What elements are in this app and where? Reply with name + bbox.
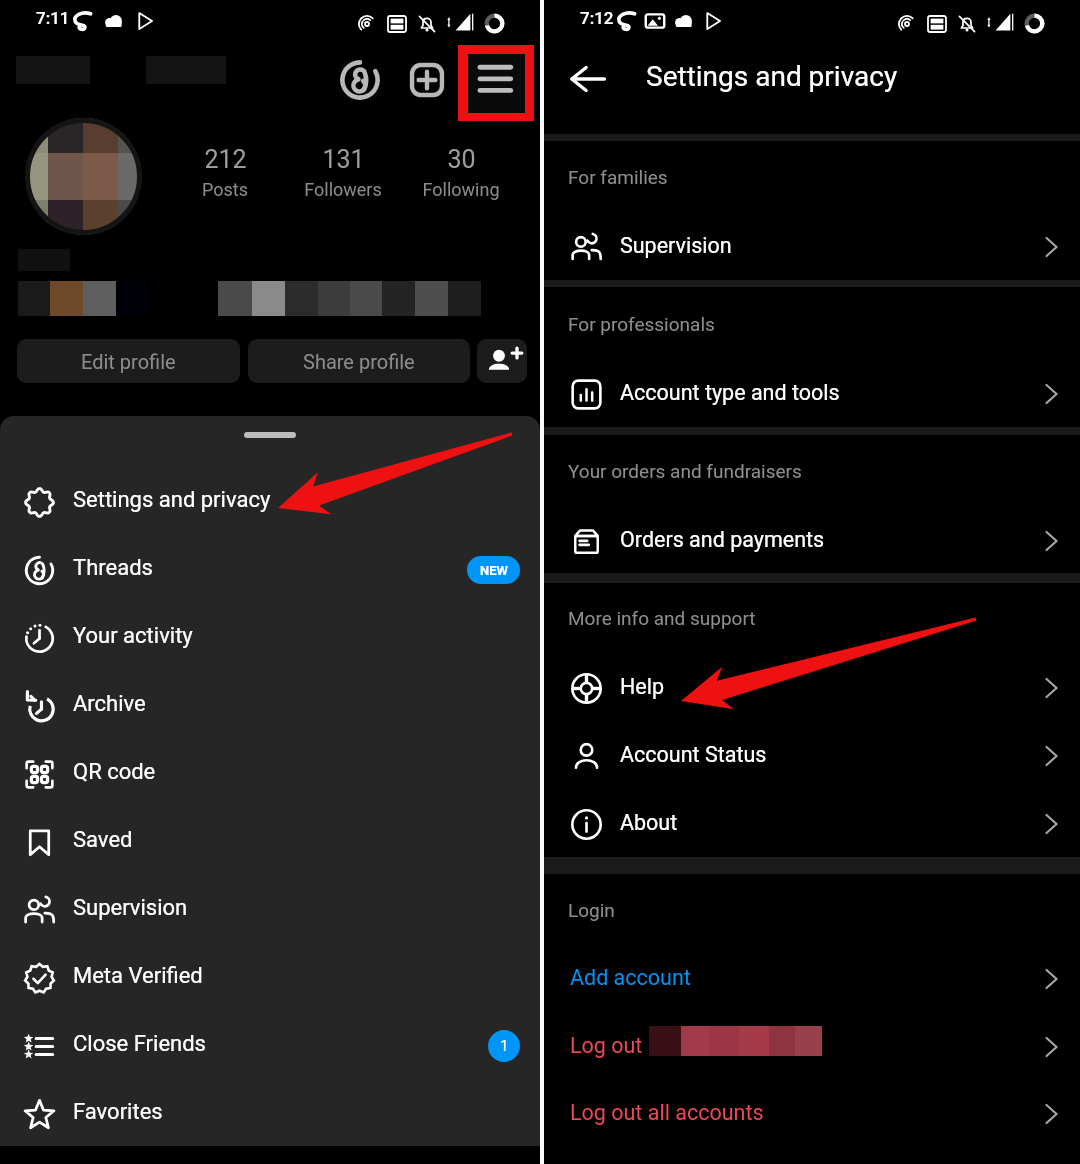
staticText: 7:12	[580, 8, 614, 28]
button[interactable]: Add account	[544, 946, 1080, 1012]
staticText: NEW	[480, 563, 508, 578]
staticText: Favorites	[73, 1099, 163, 1125]
staticText: Saved	[73, 827, 133, 853]
staticText: Login	[568, 899, 615, 921]
button[interactable]: Log out all accounts	[544, 1081, 1080, 1147]
button[interactable]: Favorites	[0, 1080, 540, 1148]
button[interactable]: Back	[566, 55, 614, 103]
button[interactable]: About	[544, 791, 1080, 857]
button[interactable]: Supervision	[544, 214, 1080, 280]
staticText: Share profile	[303, 350, 415, 373]
staticText: Your orders and fundraisers	[568, 460, 802, 482]
staticText: 131	[322, 145, 365, 174]
staticText: Posts	[202, 179, 248, 200]
staticText: Account Status	[620, 742, 767, 767]
staticText: Log out all accounts	[570, 1100, 764, 1125]
staticText: 30	[447, 145, 476, 174]
button[interactable]: Edit profile	[17, 339, 240, 383]
staticText: 7:11	[36, 8, 70, 28]
staticText: For families	[568, 166, 668, 188]
staticText: Archive	[73, 691, 146, 717]
staticText: Supervision	[73, 895, 188, 921]
staticText: QR code	[73, 759, 156, 785]
button[interactable]: Settings and privacy	[0, 468, 540, 536]
staticText: 1	[500, 1037, 509, 1055]
staticText: About	[620, 810, 678, 835]
button[interactable]: Archive	[0, 672, 540, 740]
button[interactable]: Help	[544, 655, 1080, 721]
staticText: Settings and privacy	[73, 487, 271, 513]
button[interactable]: Menu	[468, 54, 525, 113]
button[interactable]: Meta Verified	[0, 944, 540, 1012]
button[interactable]: Discover people	[477, 339, 527, 383]
staticText: Edit profile	[81, 350, 176, 373]
button[interactable]: Threads	[0, 536, 540, 604]
button[interactable]: Supervision	[0, 876, 540, 944]
staticText: For professionals	[568, 313, 715, 335]
button[interactable]: Profile photo	[26, 118, 141, 235]
button[interactable]: Orders and payments	[544, 508, 1080, 574]
staticText: Supervision	[620, 233, 732, 258]
staticText: Account type and tools	[620, 380, 840, 405]
staticText: More info and support	[568, 607, 756, 629]
staticText: Settings and privacy	[646, 60, 898, 93]
button[interactable]: Log out	[544, 1014, 1080, 1080]
button[interactable]: Share profile	[248, 339, 470, 383]
staticText: 212	[204, 145, 247, 174]
staticText: Followers	[304, 179, 382, 200]
button[interactable]: Account type and tools	[544, 361, 1080, 427]
staticText: Meta Verified	[73, 963, 203, 989]
button[interactable]: Your activity	[0, 604, 540, 672]
button[interactable]: New post	[405, 58, 449, 102]
staticText: Close Friends	[73, 1031, 206, 1057]
button[interactable]: Threads	[338, 58, 382, 102]
staticText: Threads	[73, 555, 153, 581]
staticText: Your activity	[73, 623, 193, 649]
button[interactable]: QR code	[0, 740, 540, 808]
staticText: Add account	[570, 965, 691, 990]
button[interactable]: Saved	[0, 808, 540, 876]
staticText: Log out	[570, 1033, 643, 1058]
button[interactable]: Account Status	[544, 723, 1080, 789]
staticText: Help	[620, 674, 665, 699]
button[interactable]: Close Friends	[0, 1012, 540, 1080]
staticText: Following	[422, 179, 500, 200]
staticText: Orders and payments	[620, 527, 825, 552]
